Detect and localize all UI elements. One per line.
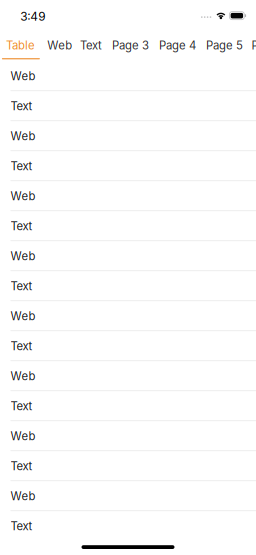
staticText: Web: [10, 489, 35, 503]
button[interactable]: Text: [0, 90, 256, 120]
staticText: Page 4: [159, 38, 196, 52]
button[interactable]: Web: [0, 60, 256, 90]
button[interactable]: Text: [0, 510, 256, 540]
button[interactable]: Page 3: [107, 36, 154, 58]
staticText: Text: [10, 219, 32, 233]
button[interactable]: Web: [0, 120, 256, 150]
staticText: Web: [10, 309, 35, 323]
button[interactable]: Text: [0, 390, 256, 420]
button[interactable]: Text: [0, 150, 256, 180]
button[interactable]: Web: [42, 36, 73, 58]
staticText: Web: [10, 429, 35, 443]
button[interactable]: Text: [0, 330, 256, 360]
staticText: Web: [10, 189, 35, 203]
staticText: Web: [10, 369, 35, 383]
staticText: Text: [10, 339, 32, 353]
button[interactable]: Table: [2, 36, 40, 58]
button[interactable]: Web: [0, 180, 256, 210]
staticText: Table: [6, 38, 35, 52]
staticText: Text: [10, 459, 32, 473]
staticText: Text: [10, 99, 32, 113]
button[interactable]: Page 6: [246, 36, 256, 58]
button[interactable]: Web: [0, 300, 256, 330]
button[interactable]: Text: [0, 210, 256, 240]
staticText: Page 3: [112, 38, 149, 52]
staticText: Web: [10, 249, 35, 263]
staticText: Text: [10, 279, 32, 293]
button[interactable]: Text: [75, 36, 105, 58]
staticText: Page 5: [206, 38, 243, 52]
button[interactable]: Web: [0, 360, 256, 390]
staticText: Web: [47, 38, 72, 52]
button[interactable]: Web: [0, 480, 256, 510]
staticText: Page 6: [251, 38, 256, 52]
staticText: Text: [10, 399, 32, 413]
button[interactable]: Text: [0, 270, 256, 300]
staticText: Text: [10, 159, 32, 173]
button[interactable]: Page 5: [201, 36, 247, 58]
button[interactable]: Web: [0, 420, 256, 450]
button[interactable]: Page 4: [154, 36, 201, 58]
staticText: Text: [10, 519, 32, 533]
staticText: Web: [10, 69, 35, 83]
staticText: 3:49: [20, 9, 45, 24]
button[interactable]: Web: [0, 240, 256, 270]
button[interactable]: Text: [0, 450, 256, 480]
staticText: Text: [80, 38, 102, 52]
staticText: Web: [10, 129, 35, 143]
